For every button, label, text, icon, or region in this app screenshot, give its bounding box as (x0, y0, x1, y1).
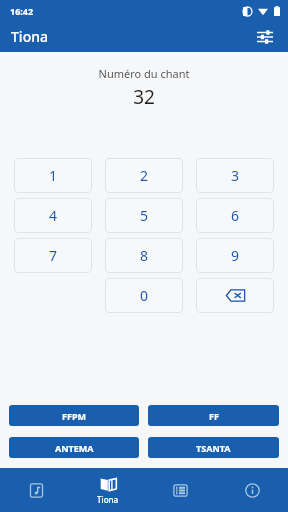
button[interactable]: Info (216, 468, 288, 512)
staticText: 2 (140, 166, 149, 185)
staticText: 0 (140, 286, 149, 305)
button[interactable]: TSANTA (148, 437, 279, 458)
staticText: 7 (49, 246, 58, 265)
staticText: ANTEMA (55, 442, 94, 454)
button[interactable]: 2 (105, 158, 183, 193)
staticText: 8 (140, 246, 149, 265)
button[interactable]: Settings (250, 22, 280, 52)
staticText: 6 (231, 206, 240, 225)
staticText: 1 (49, 166, 58, 185)
button[interactable]: FF (148, 405, 279, 426)
button[interactable]: Songs (0, 468, 72, 512)
button[interactable]: 5 (105, 198, 183, 233)
button[interactable]: ANTEMA (9, 437, 139, 458)
staticText: FFPM (62, 410, 86, 422)
staticText: 16:42 (10, 5, 34, 17)
staticText: 3 (231, 166, 240, 185)
staticText: 32 (0, 84, 288, 110)
staticText: 4 (49, 206, 58, 225)
button[interactable]: FFPM (9, 405, 139, 426)
button[interactable]: 7 (14, 238, 92, 273)
button[interactable]: 6 (196, 198, 274, 233)
staticText: FF (209, 410, 219, 422)
button[interactable]: 9 (196, 238, 274, 273)
staticText: 5 (140, 206, 149, 225)
button[interactable]: 4 (14, 198, 92, 233)
staticText: TSANTA (196, 442, 231, 454)
staticText: Tiona (11, 27, 48, 46)
button[interactable]: 3 (196, 158, 274, 193)
staticText: Tiona (97, 494, 119, 505)
button[interactable]: Backspace (196, 278, 274, 313)
staticText: Numéro du chant (0, 66, 288, 81)
button[interactable]: 1 (14, 158, 92, 193)
button[interactable]: List (144, 468, 216, 512)
button[interactable]: 8 (105, 238, 183, 273)
staticText: 9 (231, 246, 240, 265)
button[interactable]: 0 (105, 278, 183, 313)
button[interactable]: Tiona (72, 468, 144, 512)
